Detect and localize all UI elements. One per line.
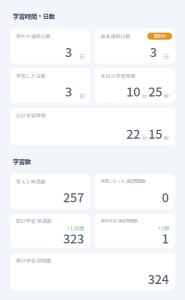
staticText: +138語 bbox=[67, 224, 84, 232]
staticText: 22 bbox=[126, 124, 140, 142]
staticText: 323 bbox=[63, 229, 84, 247]
staticText: 学習した日数 bbox=[16, 72, 46, 79]
staticText: 10 bbox=[126, 82, 140, 100]
staticText: 日 bbox=[79, 92, 84, 100]
staticText: 更新中 bbox=[154, 33, 166, 39]
staticText: 3 bbox=[65, 43, 72, 61]
staticText: 秒 bbox=[164, 92, 169, 100]
staticText: 学習数 bbox=[13, 157, 31, 166]
staticText: 最高連続日数 bbox=[100, 33, 130, 40]
staticText: 324 bbox=[148, 270, 169, 288]
button[interactable]: 累計学習 問題数 bbox=[10, 253, 175, 290]
button[interactable]: 合計学習時間 bbox=[10, 108, 175, 145]
staticText: 日 bbox=[79, 52, 84, 60]
staticText: 1 bbox=[162, 229, 169, 247]
button[interactable]: 最高連続日数 bbox=[94, 29, 175, 64]
button[interactable]: 累計学習 演習問題数 bbox=[94, 213, 175, 248]
staticText: 3 bbox=[65, 82, 72, 100]
staticText: 累計学習 演習問題数 bbox=[100, 217, 137, 224]
staticText: 分 bbox=[142, 92, 147, 100]
button[interactable]: 本日の学習時間 bbox=[94, 68, 175, 103]
button[interactable]: 累計学習 単語数 bbox=[10, 213, 90, 248]
button[interactable]: 学習した日数 bbox=[10, 68, 90, 103]
staticText: 累計学習 問題数 bbox=[16, 257, 52, 264]
button[interactable]: 現在の連続日数 bbox=[10, 29, 90, 64]
staticText: 本日の学習時間 bbox=[100, 72, 135, 79]
staticText: 分 bbox=[142, 134, 147, 142]
staticText: 得意になった 演習問題数 bbox=[100, 178, 145, 184]
staticText: 15 bbox=[148, 124, 162, 142]
staticText: 覚えた単語数 bbox=[16, 178, 46, 185]
staticText: 現在の連続日数 bbox=[16, 33, 51, 40]
staticText: 257 bbox=[63, 188, 84, 206]
button[interactable]: 覚えた単語数 bbox=[10, 174, 90, 209]
staticText: 25 bbox=[148, 82, 162, 100]
staticText: 秒 bbox=[164, 134, 169, 142]
staticText: 学習時間・日数 bbox=[13, 11, 55, 21]
staticText: 合計学習時間 bbox=[16, 112, 46, 119]
staticText: 3 bbox=[150, 43, 157, 61]
staticText: +1問 bbox=[158, 224, 169, 232]
staticText: 累計学習 単語数 bbox=[16, 217, 52, 224]
button[interactable]: 得意になった 演習問題数 bbox=[94, 174, 175, 209]
staticText: 日 bbox=[164, 52, 169, 60]
staticText: 0 bbox=[162, 188, 169, 206]
